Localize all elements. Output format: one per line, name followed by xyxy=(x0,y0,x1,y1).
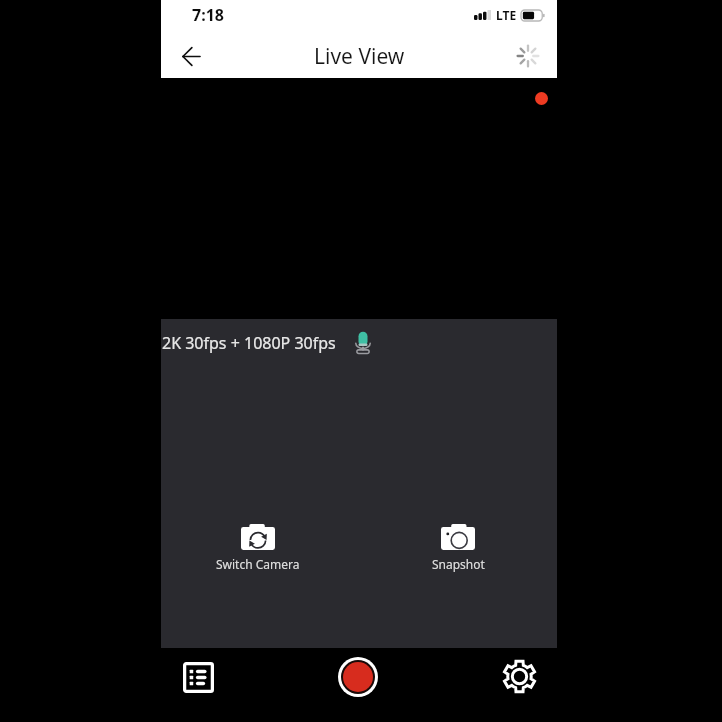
button[interactable]: Loading xyxy=(507,35,549,77)
button[interactable]: Record xyxy=(343,662,373,692)
staticText: Live View xyxy=(314,42,405,71)
button[interactable]: Switch Camera xyxy=(198,524,318,572)
button[interactable]: Back xyxy=(170,35,212,77)
button[interactable]: Recordings list xyxy=(176,655,220,699)
button[interactable]: Snapshot xyxy=(398,524,518,572)
staticText: Switch Camera xyxy=(216,556,300,572)
staticText: 2K 30fps + 1080P 30fps xyxy=(162,332,336,354)
button[interactable]: Live video preview xyxy=(161,78,557,319)
staticText: Snapshot xyxy=(432,556,485,572)
staticText: 7:18 xyxy=(192,4,224,26)
button[interactable]: Settings xyxy=(497,654,541,698)
staticText: LTE xyxy=(496,7,517,23)
